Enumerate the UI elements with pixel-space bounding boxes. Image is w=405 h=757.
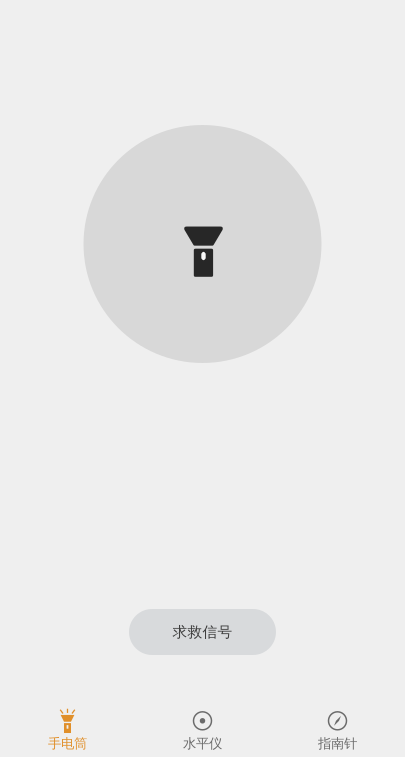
button[interactable]: 求救信号 (129, 609, 276, 655)
staticText: 手电筒 (48, 735, 87, 752)
staticText: 指南针 (318, 735, 357, 752)
staticText: 水平仪 (183, 735, 222, 752)
button[interactable]: 手电筒 (0, 708, 135, 757)
button[interactable]: Toggle flashlight (83, 125, 321, 363)
staticText: 求救信号 (172, 623, 232, 641)
button[interactable]: 指南针 (270, 708, 405, 757)
button[interactable]: 水平仪 (135, 708, 270, 757)
